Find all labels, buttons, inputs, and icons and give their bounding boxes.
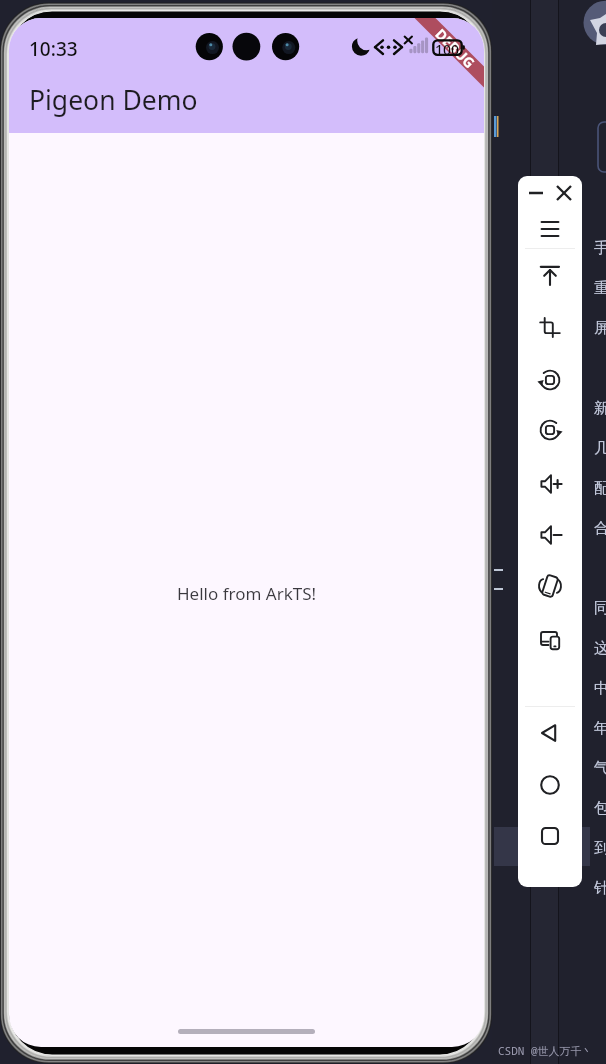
staticText: DEBUG: [431, 24, 480, 73]
staticText: 中: [594, 679, 606, 698]
staticText: 屏: [594, 319, 606, 338]
staticText: 包: [594, 799, 606, 818]
button[interactable]: Volume down: [526, 513, 574, 557]
staticText: 新: [594, 399, 606, 418]
button[interactable]: Home: [526, 763, 574, 807]
staticText: 这: [594, 639, 606, 658]
staticText: 10:33: [29, 36, 78, 62]
staticText: 几: [594, 439, 606, 458]
staticText: Hello from ArkTS!: [177, 582, 317, 605]
button[interactable]: Back: [526, 711, 574, 755]
button[interactable]: Close: [550, 178, 578, 208]
button[interactable]: Recents: [526, 814, 574, 858]
staticText: 手: [594, 239, 606, 258]
staticText: 100: [435, 40, 460, 55]
staticText: Pigeon Demo: [29, 82, 198, 118]
button[interactable]: Minimize: [522, 178, 550, 208]
staticText: 合: [594, 519, 606, 538]
staticText: 配: [594, 479, 606, 498]
button[interactable]: Tilt: [526, 564, 574, 608]
button[interactable]: Rotate right: [526, 408, 574, 452]
staticText: 到: [594, 839, 606, 858]
button[interactable]: Screenshot: [526, 305, 574, 349]
button[interactable]: Power: [526, 253, 574, 297]
button[interactable]: Volume up: [526, 462, 574, 506]
staticText: 针: [594, 879, 606, 898]
staticText: 同: [594, 599, 606, 618]
staticText: 重: [594, 279, 606, 298]
staticText: CSDN @世人万千丶: [498, 1043, 593, 1058]
staticText: 年: [594, 719, 606, 738]
button[interactable]: Multiple displays: [526, 617, 574, 661]
button[interactable]: Menu: [526, 207, 574, 251]
button[interactable]: Rotate left: [526, 358, 574, 402]
staticText: 气: [594, 759, 606, 778]
